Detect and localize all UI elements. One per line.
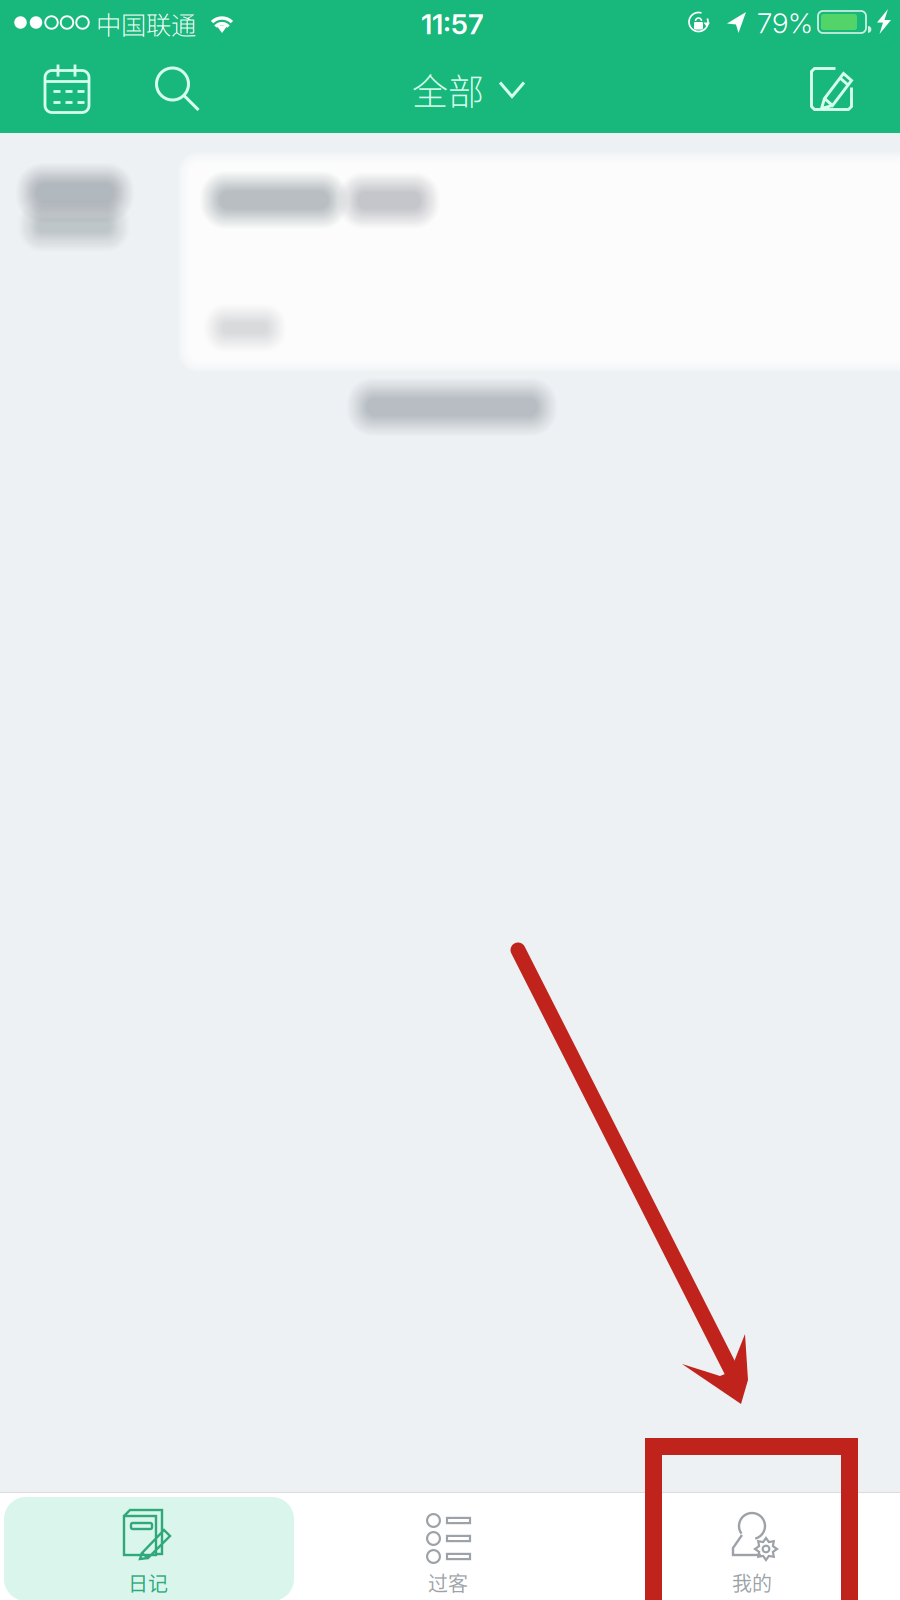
button[interactable]: 全部 [398, 46, 540, 133]
button[interactable]: 我的 [652, 1497, 852, 1600]
staticText: 11:57 [421, 7, 484, 41]
staticText: 全部 [412, 63, 484, 115]
button[interactable]: Calendar [27, 46, 107, 133]
staticText: 日记 [128, 1568, 168, 1597]
staticText: 过客 [428, 1568, 468, 1597]
button[interactable]: 过客 [348, 1497, 548, 1600]
staticText: 中国联通 [96, 5, 196, 42]
staticText: 79% [757, 6, 813, 40]
button[interactable]: 日记 [4, 1497, 294, 1600]
button[interactable]: Search [138, 46, 218, 133]
staticText: 我的 [732, 1568, 772, 1597]
button[interactable]: Compose [790, 46, 874, 133]
